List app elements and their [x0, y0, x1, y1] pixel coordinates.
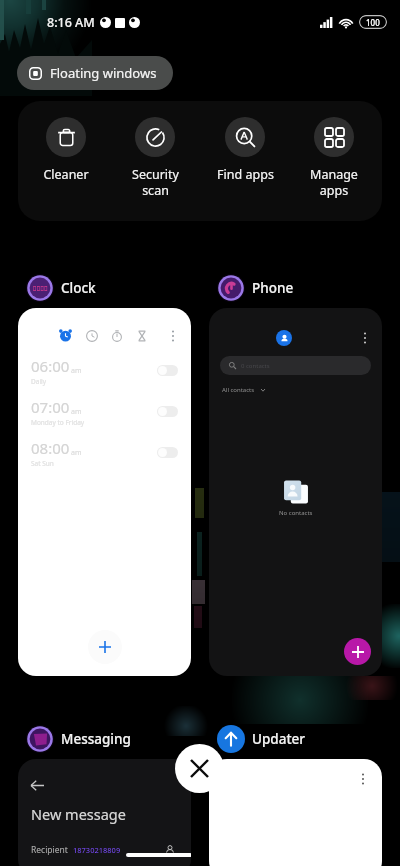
button[interactable]: Security scan [113, 117, 197, 198]
button[interactable] [209, 759, 382, 866]
button[interactable]: Add contact [344, 638, 371, 665]
staticText: Security scan [132, 166, 179, 198]
button[interactable]: Cleaner [24, 117, 108, 183]
staticText: No contacts [279, 509, 313, 517]
button[interactable]: Messaging [18, 720, 131, 757]
button[interactable]: Updater [209, 720, 306, 757]
staticText: 0 contacts [241, 362, 270, 370]
staticText: 100 [366, 17, 380, 28]
staticText: All contacts [222, 386, 255, 394]
button[interactable]: Find apps [203, 117, 287, 183]
button[interactable]: Floating windows [17, 56, 173, 90]
button[interactable]: 0 contacts [220, 356, 371, 375]
staticText: Recipient [31, 844, 68, 856]
staticText: Cleaner [43, 166, 89, 183]
button[interactable]: New message [18, 759, 191, 866]
staticText: Updater [252, 730, 306, 748]
staticText: 18730218809 [73, 845, 121, 855]
staticText: Clock [61, 279, 96, 297]
button[interactable]: 08:00 [31, 432, 178, 473]
button[interactable]: Add alarm [88, 630, 122, 664]
button[interactable]: Phone [209, 269, 294, 306]
staticText: Sat Sun [31, 459, 54, 468]
staticText: 07:00 [31, 397, 70, 417]
button[interactable]: Close all [175, 744, 224, 793]
button[interactable]: Toggle alarm [157, 406, 178, 417]
staticText: am [71, 448, 82, 458]
staticText: 8:16 AM [47, 14, 95, 31]
staticText: Find apps [217, 166, 274, 183]
staticText: Manage apps [310, 166, 358, 198]
staticText: Floating windows [50, 64, 157, 82]
button[interactable]: Manage apps [292, 117, 376, 198]
button[interactable]: 07:00 [31, 391, 178, 432]
staticText: Messaging [61, 730, 131, 748]
staticText: Monday to Friday [31, 418, 85, 427]
button[interactable]: 06:00 [31, 350, 178, 391]
staticText: Phone [252, 279, 294, 297]
button[interactable]: 06:00 [18, 308, 191, 676]
button[interactable]: Toggle alarm [157, 365, 178, 376]
staticText: am [71, 366, 82, 376]
button[interactable]: 0 contacts [209, 308, 382, 676]
button[interactable]: Toggle alarm [157, 447, 178, 458]
staticText: Daily [31, 377, 47, 386]
staticText: 08:00 [31, 438, 70, 458]
staticText: am [71, 407, 82, 417]
button[interactable]: Clock [18, 269, 96, 306]
staticText: 06:00 [31, 356, 70, 376]
staticText: New message [31, 804, 126, 824]
